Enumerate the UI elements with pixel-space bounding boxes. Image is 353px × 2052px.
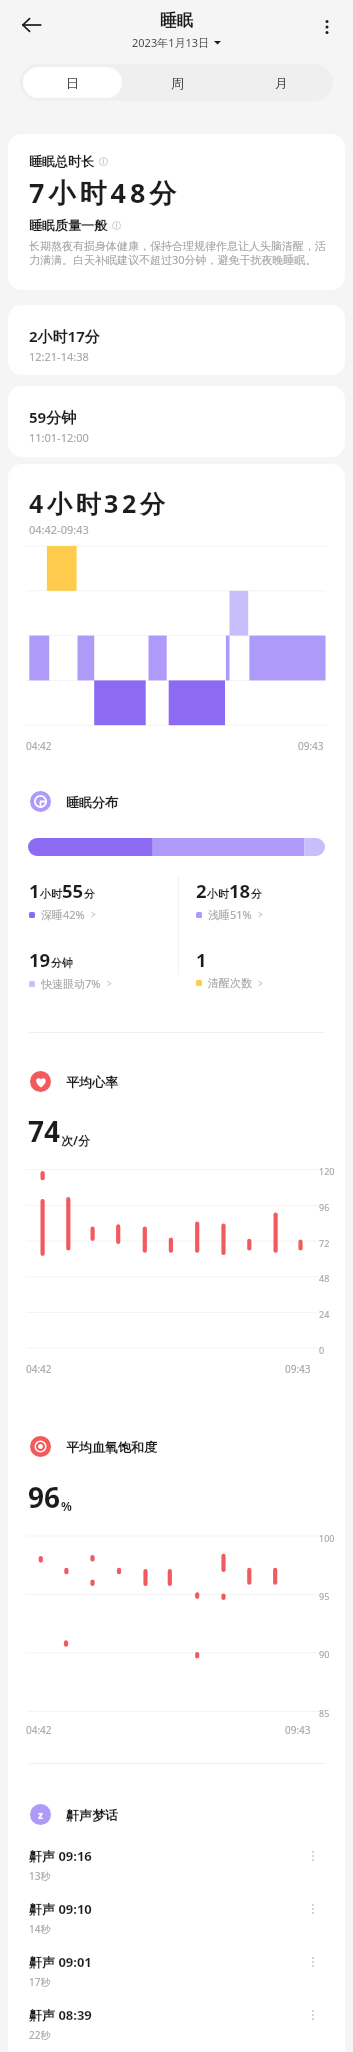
staticText: 快速眼动7% bbox=[41, 976, 101, 991]
staticText: 96 bbox=[28, 1478, 61, 1516]
staticText: 1 bbox=[29, 878, 40, 903]
button[interactable]: 鼾声 08:39 bbox=[29, 2003, 325, 2052]
staticText: 09:43 bbox=[285, 1362, 311, 1376]
staticText: 12:21-14:38 bbox=[29, 349, 89, 364]
button[interactable]: More bbox=[301, 2003, 325, 2027]
button[interactable]: 鼾声 09:01 bbox=[29, 1950, 325, 2003]
staticText: 2小时17分 bbox=[29, 326, 100, 346]
staticText: 次/分 bbox=[61, 1132, 90, 1148]
staticText: 11:01-12:00 bbox=[29, 430, 89, 445]
button[interactable]: 鼾声 09:10 bbox=[29, 1897, 325, 1950]
staticText: 长期熬夜有损身体健康，保持合理规律作息让人头脑清醒，活力满满。白天补眠建议不超过… bbox=[29, 239, 332, 267]
staticText: 2023年1月13日 bbox=[132, 35, 210, 50]
staticText: 鼾声 08:39 bbox=[29, 2006, 92, 2024]
staticText: 睡眠分布 bbox=[66, 794, 118, 810]
button[interactable]: More bbox=[301, 1897, 325, 1921]
staticText: 周 bbox=[171, 75, 184, 91]
staticText: 72 bbox=[319, 1237, 330, 1249]
staticText: 平均心率 bbox=[66, 1074, 118, 1090]
staticText: 浅睡51% bbox=[208, 907, 252, 922]
staticText: 17秒 bbox=[29, 1975, 51, 1989]
staticText: 04:42 bbox=[26, 739, 52, 753]
staticText: 1 bbox=[196, 947, 207, 972]
staticText: 睡眠质量一般 bbox=[29, 217, 107, 233]
staticText: 13秒 bbox=[29, 1869, 51, 1883]
button[interactable]: 周 bbox=[128, 67, 226, 98]
staticText: 4小时32分 bbox=[29, 486, 169, 520]
staticText: 90 bbox=[319, 1648, 330, 1660]
button[interactable]: 日 bbox=[23, 67, 122, 98]
staticText: 清醒次数 bbox=[208, 976, 252, 990]
staticText: 小时 bbox=[40, 887, 62, 901]
button[interactable]: 2 bbox=[196, 878, 336, 922]
staticText: 睡眠 bbox=[160, 10, 193, 31]
staticText: 7小时48分 bbox=[29, 174, 181, 211]
staticText: 分 bbox=[251, 887, 262, 901]
staticText: z bbox=[38, 1808, 43, 1822]
staticText: % bbox=[61, 1498, 72, 1514]
staticText: 24 bbox=[319, 1308, 330, 1320]
staticText: 59分钟 bbox=[29, 407, 77, 427]
button[interactable]: More options bbox=[311, 11, 343, 43]
staticText: 深睡42% bbox=[41, 907, 85, 922]
staticText: 0 bbox=[319, 1344, 325, 1356]
staticText: 74 bbox=[28, 1112, 61, 1150]
button[interactable]: Back bbox=[13, 6, 50, 43]
staticText: 04:42 bbox=[26, 1362, 52, 1376]
staticText: 19 bbox=[29, 947, 51, 972]
staticText: 22秒 bbox=[29, 2028, 51, 2042]
staticText: 09:43 bbox=[285, 1723, 311, 1737]
staticText: 14秒 bbox=[29, 1922, 51, 1936]
staticText: 鼾声 09:16 bbox=[29, 1847, 92, 1865]
button[interactable]: 1 bbox=[196, 947, 336, 990]
staticText: 小时 bbox=[207, 887, 229, 901]
staticText: 48 bbox=[319, 1272, 330, 1284]
staticText: 鼾声梦话 bbox=[66, 1807, 118, 1823]
staticText: 分钟 bbox=[51, 956, 73, 970]
staticText: 睡眠总时长 bbox=[29, 153, 94, 169]
button[interactable]: More bbox=[301, 1950, 325, 1974]
staticText: 100 bbox=[319, 1532, 335, 1544]
button[interactable]: 月 bbox=[232, 67, 330, 98]
staticText: 分 bbox=[84, 887, 95, 901]
button[interactable]: 2023年1月13日 bbox=[132, 35, 221, 50]
button[interactable]: 19 bbox=[29, 947, 169, 991]
staticText: 18 bbox=[229, 878, 251, 903]
staticText: 日 bbox=[66, 75, 79, 91]
button[interactable]: 鼾声 09:16 bbox=[29, 1844, 325, 1897]
staticText: 04:42 bbox=[26, 1723, 52, 1737]
staticText: 95 bbox=[319, 1590, 330, 1602]
staticText: 55 bbox=[62, 878, 84, 903]
button[interactable]: More bbox=[301, 1844, 325, 1868]
button[interactable]: 1 bbox=[29, 878, 169, 922]
staticText: 平均血氧饱和度 bbox=[66, 1439, 157, 1455]
staticText: 120 bbox=[319, 1165, 335, 1177]
staticText: 09:43 bbox=[298, 739, 324, 753]
staticText: 鼾声 09:10 bbox=[29, 1900, 92, 1918]
staticText: 2 bbox=[196, 878, 207, 903]
staticText: 鼾声 09:01 bbox=[29, 1953, 92, 1971]
staticText: 85 bbox=[319, 1707, 330, 1719]
staticText: 04:42-09:43 bbox=[29, 522, 89, 537]
staticText: 月 bbox=[275, 75, 288, 91]
staticText: 96 bbox=[319, 1201, 330, 1213]
